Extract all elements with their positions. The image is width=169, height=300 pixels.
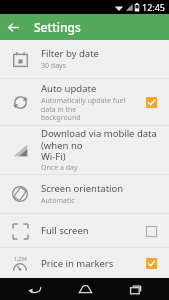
- button[interactable]: Checked: [141, 253, 161, 273]
- staticText: 30 days: [41, 61, 66, 71]
- button[interactable]: Full screen: [0, 214, 169, 247]
- button[interactable]: Recent apps: [118, 278, 152, 300]
- button[interactable]: 1,234: [0, 248, 169, 278]
- button[interactable]: Auto update: [0, 79, 169, 125]
- button[interactable]: Filter by date: [0, 40, 169, 78]
- button[interactable]: Unchecked: [141, 221, 161, 241]
- staticText: 12:45: [142, 1, 166, 13]
- button[interactable]: Checked: [141, 92, 161, 112]
- staticText: Once a day: [41, 163, 78, 173]
- staticText: Automatic: [41, 196, 75, 206]
- staticText: Full screen: [41, 224, 89, 237]
- staticText: Filter by date: [41, 47, 99, 60]
- button[interactable]: Back: [17, 278, 51, 300]
- button[interactable]: Download via mobile data (when no Wi-Fi): [0, 126, 169, 174]
- staticText: Screen orientation: [41, 182, 124, 195]
- button[interactable]: Back: [0, 14, 26, 40]
- staticText: Settings: [34, 19, 81, 35]
- staticText: Price in markers: [41, 257, 114, 270]
- button[interactable]: Screen orientation: [0, 175, 169, 213]
- staticText: Download via mobile data (when no Wi-Fi): [41, 127, 161, 162]
- staticText: Auto update: [41, 82, 97, 95]
- staticText: Automatically update fuel data in the ba…: [41, 96, 135, 122]
- staticText: 1,234: [14, 256, 27, 263]
- button[interactable]: Home: [68, 278, 102, 300]
